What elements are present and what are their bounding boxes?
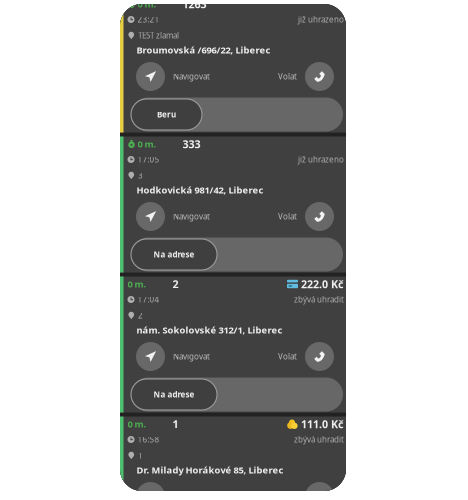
button[interactable]: Navigovat [136, 482, 210, 500]
staticText: 222.0 Kč [301, 277, 344, 291]
button[interactable]: Volat [278, 202, 334, 231]
staticText: 111.0 Kč [301, 417, 344, 431]
staticText: 17:04 [137, 294, 159, 305]
button[interactable]: Navigovat [136, 202, 210, 231]
button[interactable]: Na adrese [131, 237, 343, 271]
staticText: 1 [172, 417, 178, 431]
staticText: Hodkovická 981/42, Liberec [136, 184, 263, 196]
staticText: Volat [278, 351, 297, 362]
staticText: zbývá uhradit [294, 434, 344, 445]
staticText: 333 [182, 137, 200, 151]
staticText: Na adrese [153, 389, 194, 400]
staticText: 0 m. [137, 0, 156, 10]
staticText: již uhrazeno [298, 14, 344, 25]
staticText: Navigovat [173, 211, 210, 222]
staticText: Volat [278, 71, 297, 82]
staticText: Navigovat [173, 71, 210, 82]
staticText: 0 m. [127, 278, 146, 290]
button[interactable]: Navigovat [136, 342, 210, 371]
staticText: 16:58 [137, 434, 159, 445]
staticText: Broumovská /696/22, Liberec [136, 44, 270, 56]
staticText: zbývá uhradit [294, 294, 344, 305]
button[interactable]: Volat [278, 62, 334, 91]
staticText: 3 [138, 170, 143, 181]
button[interactable]: Volat [278, 342, 334, 371]
staticText: Volat [278, 211, 297, 222]
staticText: 17:05 [137, 154, 159, 165]
staticText: 2 [138, 310, 143, 321]
staticText: 0 m. [137, 138, 156, 150]
staticText: 2 [172, 277, 178, 291]
staticText: TEST zlamal [138, 30, 179, 41]
button[interactable]: Beru [131, 97, 343, 131]
staticText: Beru [157, 109, 176, 120]
staticText: již uhrazeno [298, 154, 344, 165]
button[interactable]: Volat [278, 482, 334, 500]
staticText: Na adrese [153, 249, 194, 260]
staticText: Dr. Milady Horákové 85, Liberec [136, 464, 283, 476]
staticText: nám. Sokolovské 312/1, Liberec [136, 324, 282, 336]
staticText: 0 m. [127, 418, 146, 430]
button[interactable]: Navigovat [136, 62, 210, 91]
staticText: 23:21 [137, 14, 159, 25]
staticText: Navigovat [173, 351, 210, 362]
staticText: 1263 [182, 0, 206, 11]
button[interactable]: Na adrese [131, 377, 343, 411]
staticText: 1 [138, 450, 143, 461]
